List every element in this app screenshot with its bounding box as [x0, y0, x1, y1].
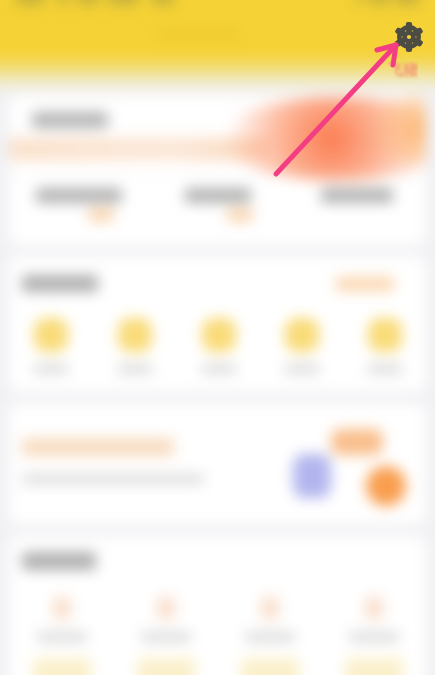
- button[interactable]: [9, 596, 114, 675]
- button[interactable]: [336, 277, 394, 291]
- button[interactable]: [9, 318, 93, 374]
- button[interactable]: [343, 318, 426, 374]
- staticText: 飞猪: [388, 61, 418, 80]
- button[interactable]: [9, 404, 426, 524]
- button[interactable]: [93, 318, 177, 374]
- button[interactable]: [218, 596, 322, 675]
- button[interactable]: [114, 596, 218, 675]
- button[interactable]: [260, 318, 343, 374]
- button[interactable]: [177, 318, 260, 374]
- button[interactable]: [287, 188, 426, 240]
- button[interactable]: Settings: [394, 22, 424, 52]
- button[interactable]: [322, 596, 426, 675]
- button[interactable]: [9, 188, 148, 240]
- button[interactable]: [148, 188, 287, 240]
